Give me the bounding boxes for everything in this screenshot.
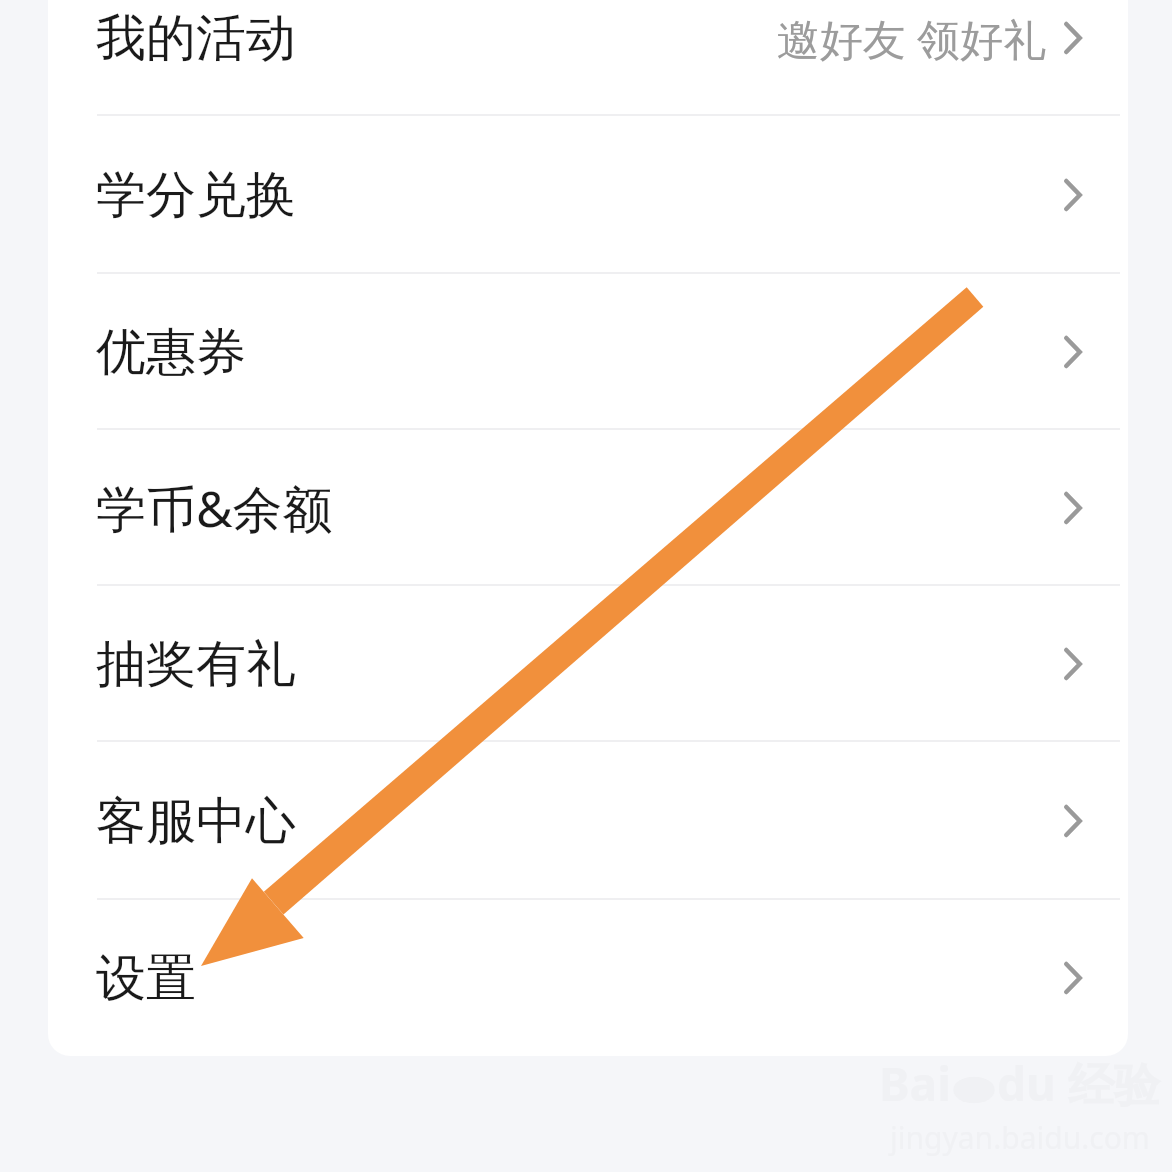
staticText: 设置 bbox=[96, 947, 196, 1010]
staticText: 学分兑换 bbox=[96, 164, 296, 227]
staticText: du 经验 bbox=[997, 1052, 1160, 1115]
button[interactable]: 客服中心 bbox=[48, 742, 1128, 900]
staticText: 邀好友 领好礼 bbox=[776, 9, 1046, 68]
other: Open bbox=[1060, 644, 1086, 684]
other: Open bbox=[1060, 958, 1086, 998]
button[interactable]: 学分兑换 bbox=[48, 116, 1128, 274]
staticText: 我的活动 bbox=[96, 7, 296, 70]
other: Open bbox=[1060, 801, 1086, 841]
staticText: 优惠券 bbox=[96, 321, 246, 384]
staticText: 抽奖有礼 bbox=[96, 633, 296, 696]
other: Open bbox=[1060, 332, 1086, 372]
staticText: 客服中心 bbox=[96, 790, 296, 853]
button[interactable]: 我的活动 bbox=[48, 0, 1128, 116]
other: Open bbox=[1060, 488, 1086, 528]
button[interactable]: 抽奖有礼 bbox=[48, 586, 1128, 742]
other: Open bbox=[1060, 175, 1086, 215]
staticText: Bai bbox=[879, 1052, 951, 1115]
button[interactable]: 优惠券 bbox=[48, 274, 1128, 430]
button[interactable]: 设置 bbox=[48, 900, 1128, 1056]
button[interactable]: 学币&余额 bbox=[48, 430, 1128, 586]
staticText: 学币&余额 bbox=[96, 474, 333, 542]
other: Open bbox=[1060, 18, 1086, 58]
